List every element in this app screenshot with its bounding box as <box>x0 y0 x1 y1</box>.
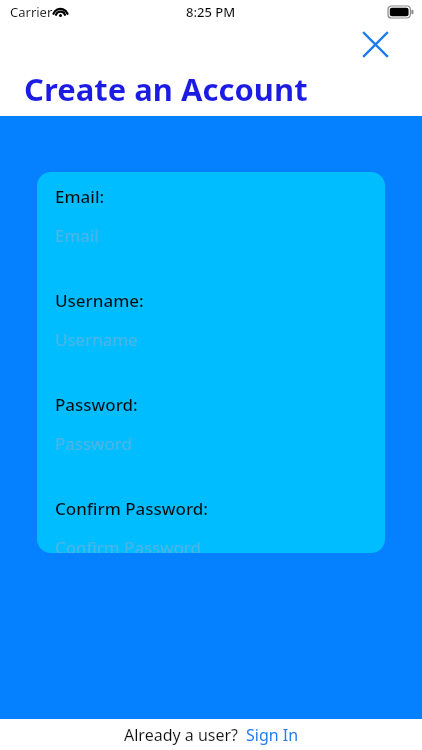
staticText: Username <box>55 328 138 350</box>
button[interactable]: Sign In <box>246 724 299 746</box>
staticText: 8:25 PM <box>186 3 236 21</box>
button[interactable]: Password <box>55 432 367 454</box>
button[interactable]: Confirm Password <box>55 536 367 553</box>
staticText: Already a user? <box>124 724 239 746</box>
button[interactable]: Email <box>55 224 367 246</box>
staticText: Sign In <box>246 724 299 746</box>
staticText: Password <box>55 432 132 454</box>
button[interactable]: Close <box>352 21 398 67</box>
staticText: Email: <box>55 185 105 208</box>
staticText: Username: <box>55 289 144 312</box>
staticText: Confirm Password: <box>55 497 208 520</box>
staticText: Confirm Password <box>55 536 201 553</box>
staticText: Carrier <box>10 3 53 21</box>
button[interactable]: Username <box>55 328 367 350</box>
staticText: Create an Account <box>24 68 308 110</box>
staticText: Email <box>55 224 99 246</box>
staticText: Password: <box>55 393 138 416</box>
